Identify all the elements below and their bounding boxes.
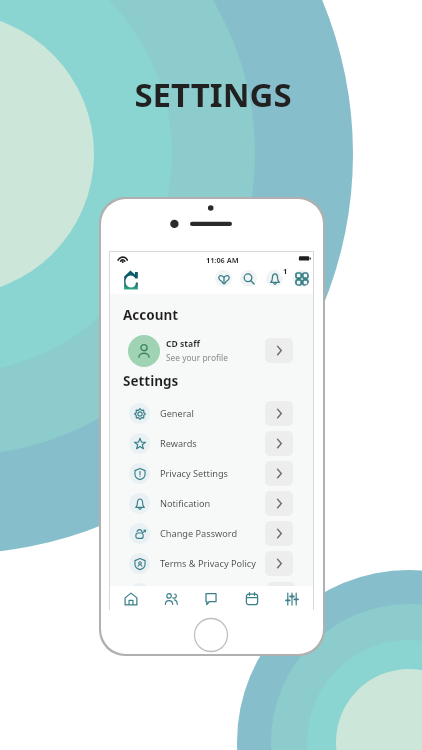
button[interactable]: Settings: [278, 586, 306, 611]
button[interactable]: Search: [240, 270, 257, 287]
button[interactable]: Open: [265, 551, 293, 576]
staticText: Terms & Privacy Policy: [160, 557, 256, 570]
button[interactable]: Notification: [110, 488, 313, 518]
staticText: Privacy Settings: [160, 467, 228, 480]
button[interactable]: Home: [117, 586, 145, 611]
button[interactable]: Open: [265, 431, 293, 456]
button[interactable]: Filter: [215, 270, 232, 287]
button[interactable]: Calendar: [238, 586, 266, 611]
button[interactable]: Open: [265, 338, 293, 363]
button[interactable]: Open: [265, 401, 293, 426]
button[interactable]: Rewards: [110, 428, 313, 458]
button[interactable]: Privacy Settings: [110, 458, 313, 488]
staticText: SETTINGS: [2, 72, 422, 117]
button[interactable]: Open: [265, 461, 293, 486]
staticText: 1: [283, 266, 288, 276]
button[interactable]: Notifications: [266, 270, 283, 287]
button[interactable]: Apps: [293, 270, 310, 287]
staticText: 11:06 AM: [206, 255, 239, 265]
staticText: Account: [123, 306, 179, 324]
staticText: See your profile: [166, 352, 228, 363]
staticText: CD staff: [166, 338, 200, 350]
button[interactable]: Change Password: [110, 518, 313, 548]
staticText: Notification: [160, 497, 211, 510]
staticText: Rewards: [160, 437, 197, 450]
button[interactable]: Open: [265, 491, 293, 516]
button[interactable]: CD staff: [110, 334, 313, 367]
staticText: Change Password: [160, 527, 238, 540]
button[interactable]: Terms & Privacy Policy: [110, 548, 313, 578]
button[interactable]: Home logo: [122, 270, 140, 290]
staticText: Settings: [123, 372, 179, 390]
button[interactable]: Messages: [197, 586, 225, 611]
button[interactable]: Open: [265, 521, 293, 546]
button[interactable]: People: [157, 586, 185, 611]
staticText: General: [160, 407, 194, 420]
button[interactable]: General: [110, 398, 313, 428]
